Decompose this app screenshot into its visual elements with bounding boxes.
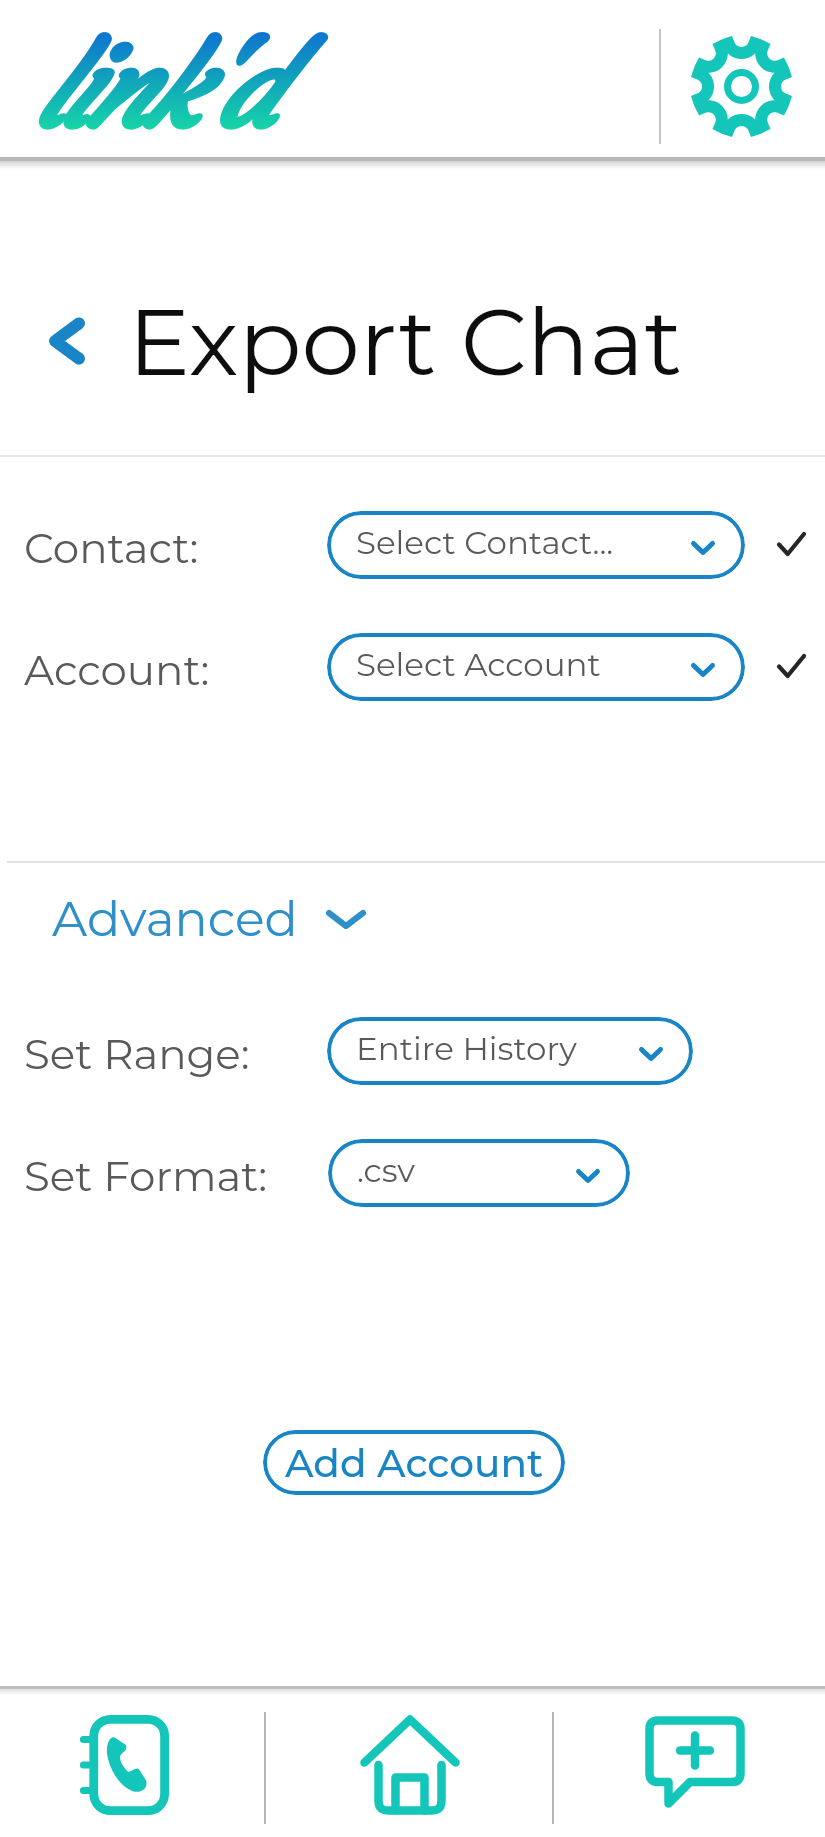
staticText: Contact: <box>24 522 199 573</box>
button[interactable]: Advanced <box>52 886 366 952</box>
button[interactable]: Select Contact... <box>327 511 745 579</box>
button[interactable]: New message <box>625 1702 765 1830</box>
staticText: Advanced <box>52 889 298 949</box>
staticText: Account: <box>24 644 210 695</box>
button[interactable]: .csv <box>328 1139 630 1207</box>
staticText: Set Format: <box>24 1150 268 1201</box>
staticText: Select Account <box>356 645 601 685</box>
button[interactable]: Settings <box>684 29 799 144</box>
staticText: Select Contact... <box>356 523 614 563</box>
button[interactable]: Contacts <box>54 1701 194 1829</box>
staticText: link'd <box>32 20 268 160</box>
button[interactable]: Entire History <box>327 1017 693 1085</box>
button[interactable]: Add Account <box>263 1430 565 1495</box>
button[interactable]: Home <box>339 1701 481 1829</box>
button[interactable]: Select Account <box>327 633 745 701</box>
staticText: Entire History <box>356 1029 577 1069</box>
staticText: Export Chat <box>128 285 683 398</box>
staticText: .csv <box>357 1151 415 1191</box>
staticText: Add Account <box>285 1439 544 1487</box>
button[interactable]: Back <box>36 310 98 372</box>
staticText: Set Range: <box>24 1028 250 1079</box>
